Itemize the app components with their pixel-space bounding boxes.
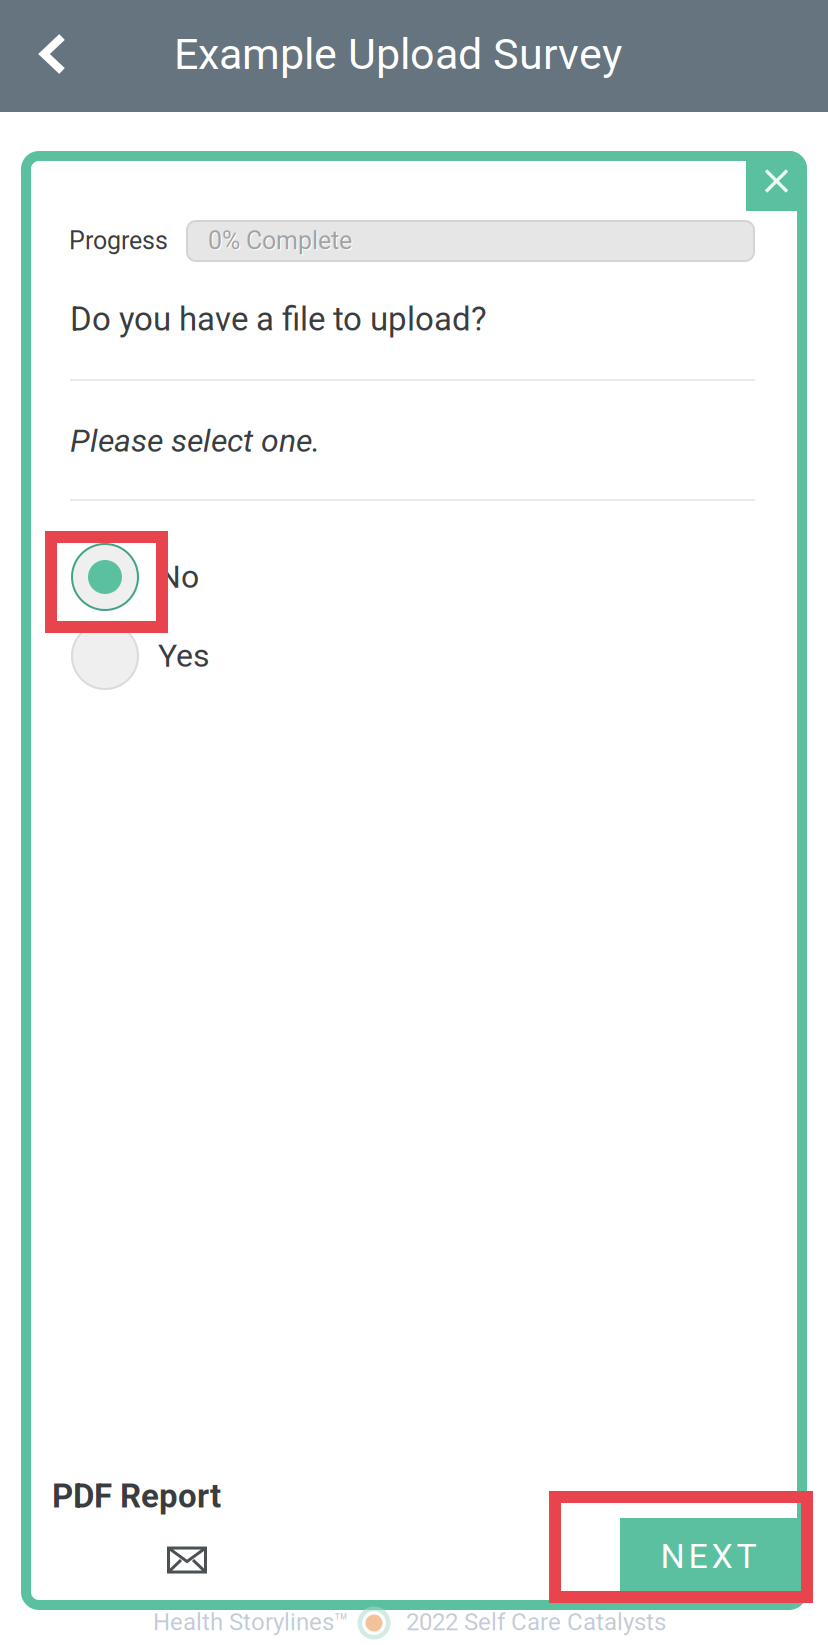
staticText: NEXT	[660, 1537, 756, 1576]
staticText: Do you have a file to upload?	[70, 300, 487, 339]
button[interactable]: Yes	[71, 620, 261, 692]
staticText: Progress	[69, 226, 168, 255]
button[interactable]: NEXT	[620, 1518, 797, 1595]
staticText: No	[158, 558, 199, 595]
button[interactable]: Email PDF report	[147, 1526, 227, 1594]
staticText: Please select one.	[70, 422, 320, 459]
button[interactable]: Close	[746, 151, 807, 211]
staticText: Example Upload Survey	[174, 29, 622, 79]
staticText: 2022 Self Care Catalysts	[406, 1608, 666, 1636]
button[interactable]: No	[71, 541, 261, 613]
staticText: Yes	[158, 637, 210, 674]
button[interactable]: Back	[7, 0, 99, 112]
staticText: PDF Report	[52, 1477, 221, 1516]
staticText: 0% Complete	[209, 227, 353, 256]
staticText: Health Storylines™	[153, 1608, 349, 1636]
staticText: 0% Complete	[208, 226, 352, 255]
